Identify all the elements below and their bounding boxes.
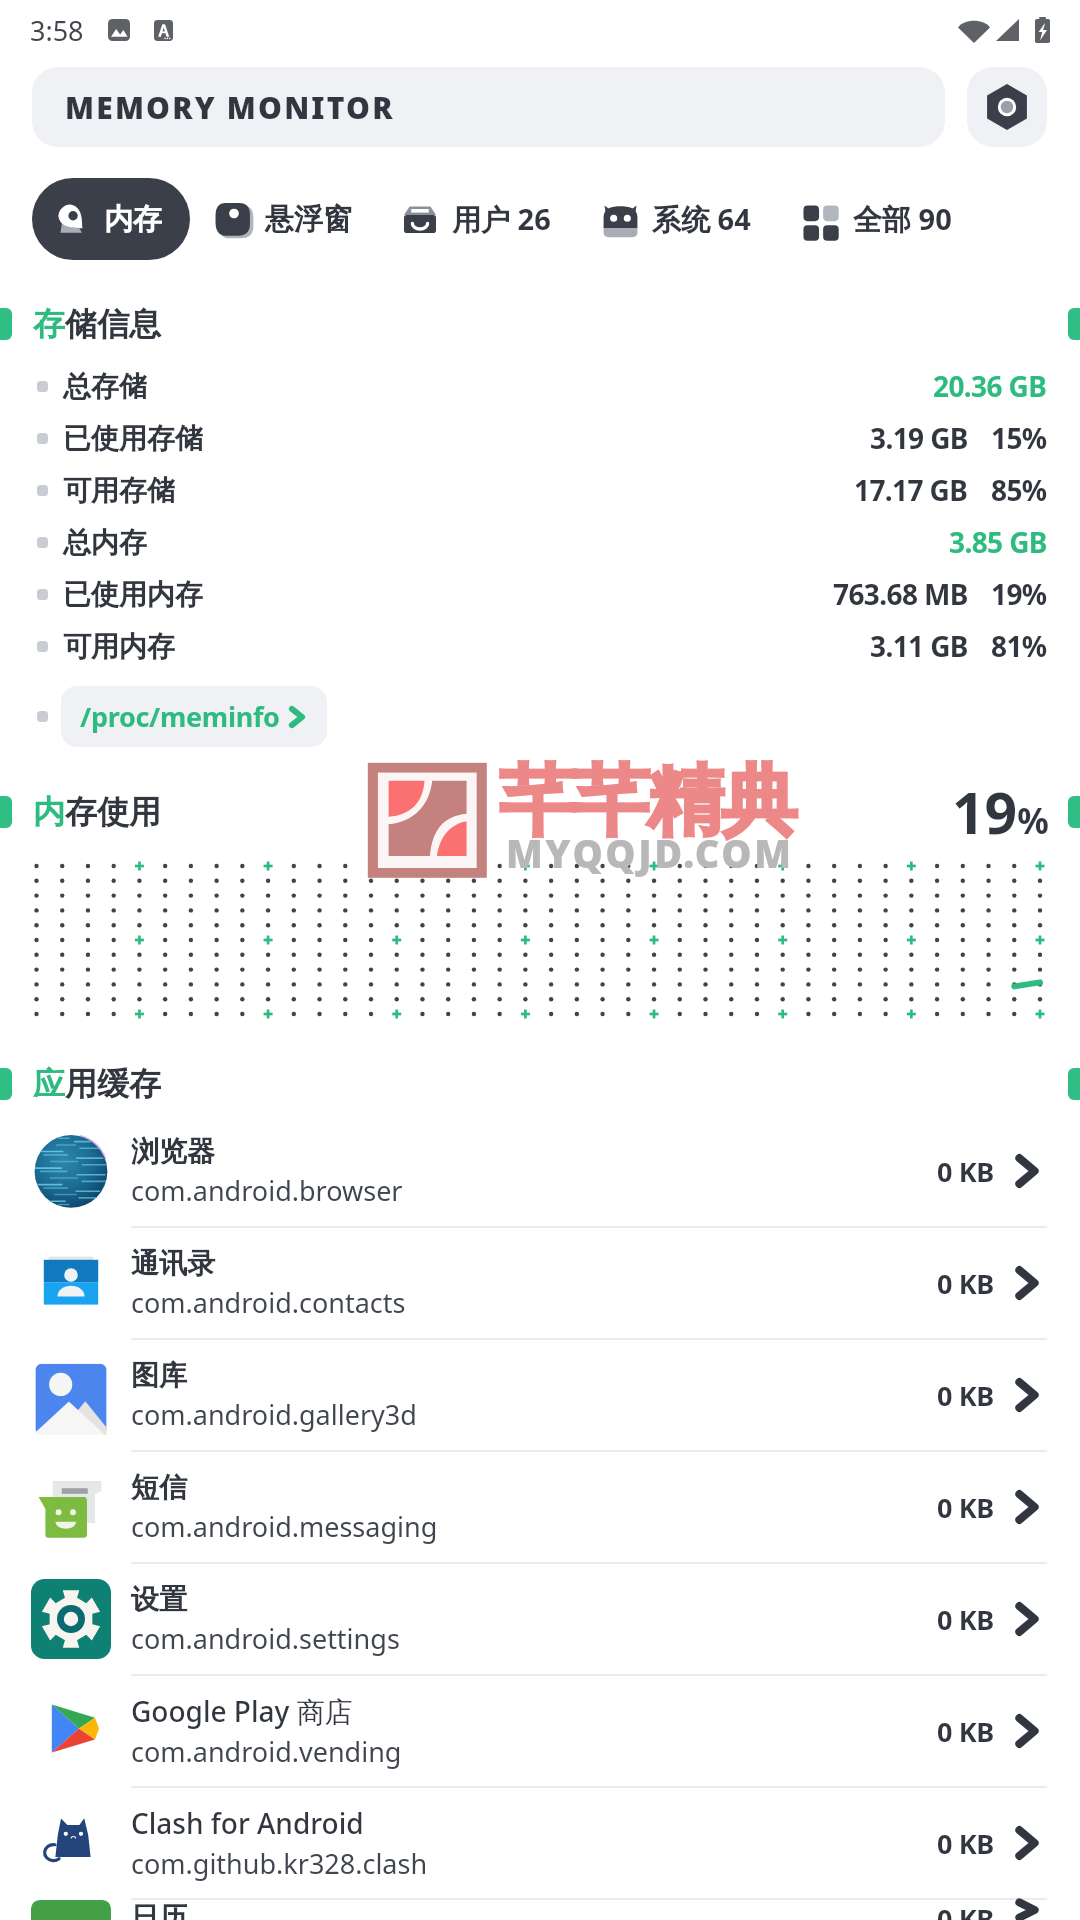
button[interactable]: 总内存 bbox=[0, 516, 1080, 568]
staticText: Google Play 商店 bbox=[131, 1692, 353, 1730]
staticText: 图库 bbox=[131, 1358, 187, 1393]
staticText: com.android.messaging bbox=[131, 1508, 438, 1545]
staticText: 0 KB bbox=[937, 1489, 994, 1526]
staticText: 通讯录 bbox=[131, 1246, 215, 1281]
staticText: 可用存储 bbox=[63, 473, 175, 508]
staticText: 3.19 GB bbox=[870, 419, 968, 457]
staticText: 日历 bbox=[131, 1900, 187, 1920]
staticText: 3.85 GB bbox=[949, 523, 1047, 561]
staticText: 0 KB bbox=[937, 1713, 994, 1750]
button[interactable]: 内存 bbox=[32, 178, 190, 260]
staticText: com.android.browser bbox=[131, 1172, 403, 1209]
button[interactable]: 日历 bbox=[0, 1898, 1080, 1920]
staticText: 0 KB bbox=[937, 1601, 994, 1638]
staticText: 系统 64 bbox=[652, 199, 751, 239]
staticText: 存储信息 bbox=[33, 304, 161, 344]
staticText: 悬浮窗 bbox=[265, 201, 352, 238]
staticText: com.github.kr328.clash bbox=[131, 1845, 428, 1882]
staticText: 短信 bbox=[131, 1470, 187, 1505]
staticText: com.android.settings bbox=[131, 1620, 400, 1657]
staticText: 用户 26 bbox=[452, 199, 551, 239]
button[interactable]: 浏览器 bbox=[0, 1116, 1080, 1226]
staticText: 0 KB bbox=[937, 1265, 994, 1302]
staticText: 3:58 bbox=[30, 12, 84, 49]
button[interactable]: 可用存储 bbox=[0, 464, 1080, 516]
button[interactable]: 悬浮窗 bbox=[213, 178, 352, 260]
staticText: 浏览器 bbox=[131, 1134, 215, 1169]
staticText: 已使用存储 bbox=[63, 421, 203, 456]
staticText: com.android.vending bbox=[131, 1733, 402, 1770]
staticText: com.android.gallery3d bbox=[131, 1396, 417, 1433]
staticText: 应用缓存 bbox=[33, 1064, 161, 1104]
staticText: 0 KB bbox=[937, 1900, 994, 1920]
staticText: 可用内存 bbox=[63, 629, 175, 664]
button[interactable]: 短信 bbox=[0, 1450, 1080, 1562]
button[interactable]: 已使用存储 bbox=[0, 412, 1080, 464]
staticText: 0 KB bbox=[937, 1377, 994, 1414]
button[interactable]: 设置 bbox=[0, 1562, 1080, 1674]
staticText: 17.17 GB bbox=[854, 471, 968, 509]
staticText: MYQQJD.COM bbox=[506, 827, 794, 879]
staticText: 设置 bbox=[131, 1582, 187, 1617]
button[interactable]: 已使用内存 bbox=[0, 568, 1080, 620]
staticText: 芊芊精典 bbox=[500, 754, 796, 850]
staticText: 总内存 bbox=[63, 525, 147, 560]
staticText: MEMORY MONITOR bbox=[65, 87, 395, 128]
staticText: 19% bbox=[991, 575, 1047, 613]
staticText: 总存储 bbox=[63, 369, 147, 404]
staticText: 20.36 GB bbox=[933, 367, 1047, 405]
staticText: 85% bbox=[991, 471, 1047, 509]
button[interactable]: /proc/meminfo bbox=[61, 686, 327, 747]
button[interactable]: 全部 90 bbox=[801, 178, 952, 260]
staticText: 3.11 GB bbox=[870, 627, 968, 665]
button[interactable]: Settings bbox=[967, 67, 1047, 147]
staticText: 0 KB bbox=[937, 1825, 994, 1862]
staticText: 19% bbox=[952, 773, 1049, 851]
staticText: 全部 90 bbox=[853, 199, 952, 239]
staticText: /proc/meminfo bbox=[80, 698, 280, 735]
button[interactable]: 可用内存 bbox=[0, 620, 1080, 672]
button[interactable]: 用户 26 bbox=[400, 178, 551, 260]
button[interactable]: 总存储 bbox=[0, 360, 1080, 412]
button[interactable]: 通讯录 bbox=[0, 1226, 1080, 1338]
staticText: 15% bbox=[991, 419, 1047, 457]
staticText: 763.68 MB bbox=[833, 575, 968, 613]
button[interactable]: MEMORY MONITOR bbox=[32, 67, 945, 147]
button[interactable]: Clash for Android bbox=[0, 1786, 1080, 1898]
button[interactable]: 图库 bbox=[0, 1338, 1080, 1450]
staticText: Clash for Android bbox=[131, 1804, 364, 1842]
button[interactable]: 系统 64 bbox=[597, 178, 751, 260]
staticText: 内存使用 bbox=[33, 792, 161, 832]
button[interactable]: Google Play 商店 bbox=[0, 1674, 1080, 1786]
staticText: com.android.contacts bbox=[131, 1284, 406, 1321]
staticText: 81% bbox=[991, 627, 1047, 665]
staticText: 内存 bbox=[104, 201, 162, 238]
staticText: 已使用内存 bbox=[63, 577, 203, 612]
staticText: 0 KB bbox=[937, 1153, 994, 1190]
